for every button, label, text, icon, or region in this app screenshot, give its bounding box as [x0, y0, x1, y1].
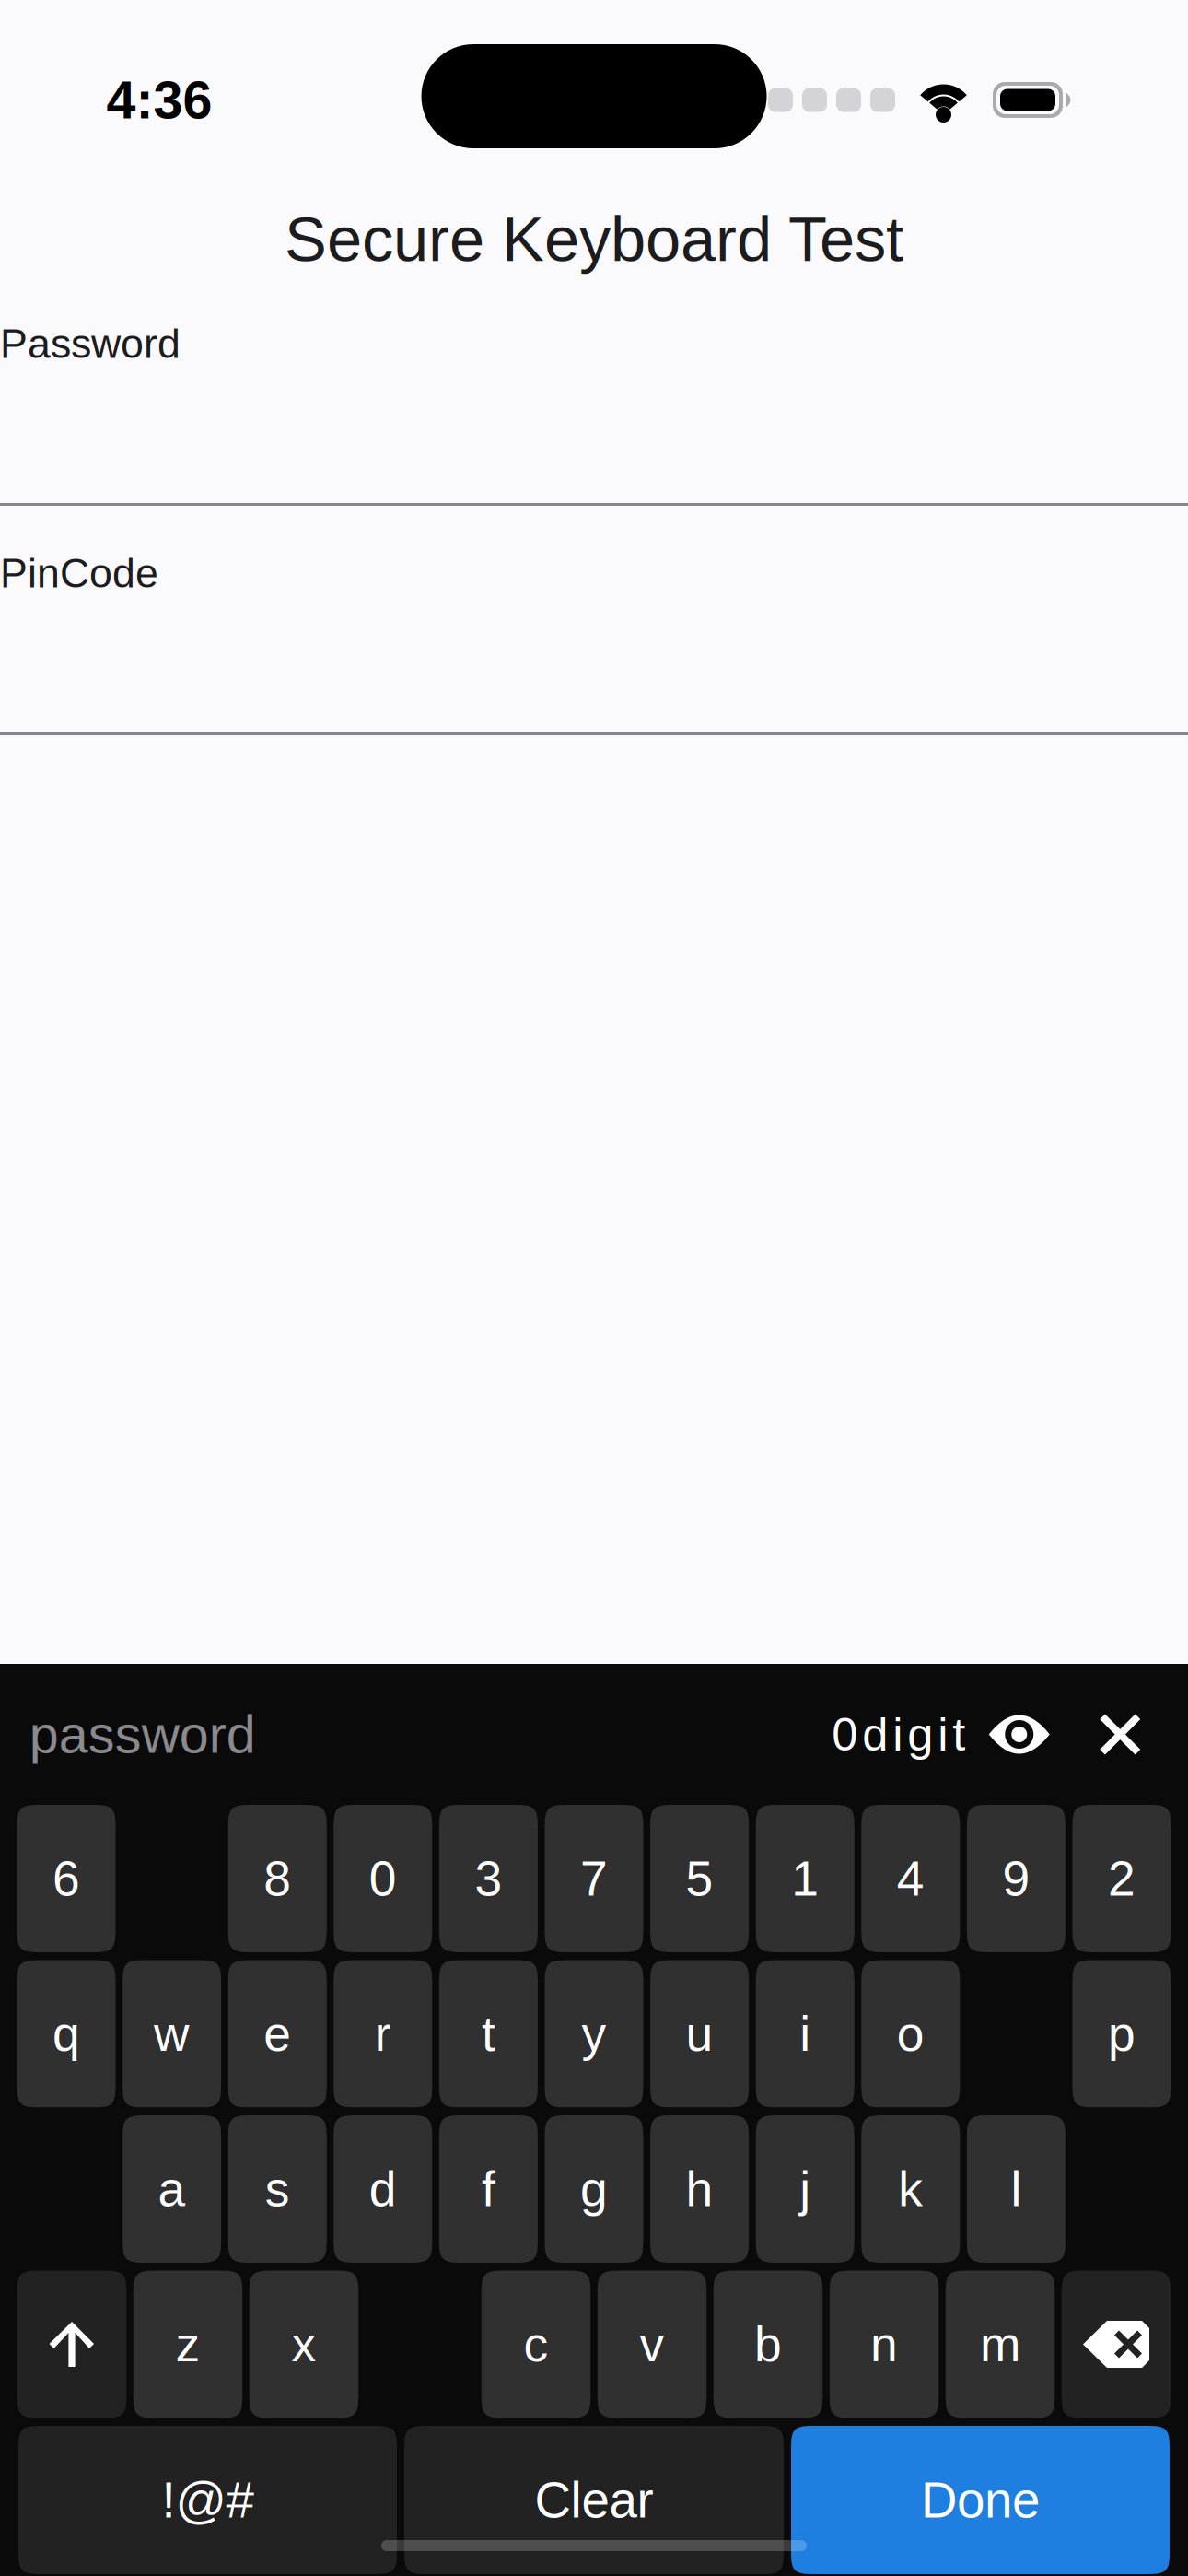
- button[interactable]: d: [334, 2115, 432, 2263]
- staticText: o: [897, 2006, 924, 2061]
- button[interactable]: e: [228, 1960, 327, 2108]
- button[interactable]: p: [1072, 1960, 1171, 2108]
- button[interactable]: w: [123, 1960, 221, 2108]
- button[interactable]: a: [123, 2115, 221, 2263]
- staticText: y: [582, 2006, 606, 2061]
- staticText: i: [800, 2006, 811, 2061]
- staticText: 2: [1108, 1851, 1136, 1906]
- staticText: 4:36: [106, 70, 212, 130]
- button[interactable]: 4: [861, 1805, 960, 1952]
- staticText: Secure Keyboard Test: [285, 204, 903, 274]
- staticText: 9: [1002, 1851, 1030, 1906]
- staticText: 0digit: [832, 1708, 965, 1760]
- staticText: 0: [369, 1851, 397, 1906]
- staticText: h: [686, 2162, 713, 2217]
- staticText: q: [52, 2006, 80, 2061]
- button[interactable]: Close keyboard: [1073, 1688, 1167, 1780]
- staticText: p: [1108, 2006, 1136, 2061]
- button[interactable]: u: [650, 1960, 749, 2108]
- staticText: PinCode: [0, 550, 158, 596]
- button[interactable]: i: [756, 1960, 854, 2108]
- staticText: t: [482, 2006, 495, 2061]
- button[interactable]: y: [545, 1960, 643, 2108]
- staticText: e: [264, 2006, 291, 2061]
- button[interactable]: c: [481, 2271, 591, 2418]
- button[interactable]: f: [439, 2115, 538, 2263]
- staticText: g: [580, 2162, 608, 2217]
- button[interactable]: Clear: [404, 2426, 784, 2574]
- button[interactable]: v: [597, 2271, 707, 2418]
- button[interactable]: g: [545, 2115, 643, 2263]
- button[interactable]: Delete: [1062, 2271, 1171, 2418]
- staticText: Done: [921, 2472, 1040, 2528]
- button[interactable]: 7: [545, 1805, 643, 1952]
- button[interactable]: 2: [1072, 1805, 1171, 1952]
- button[interactable]: Show password: [965, 1688, 1073, 1780]
- staticText: r: [375, 2006, 391, 2061]
- staticText: m: [980, 2317, 1020, 2372]
- staticText: j: [800, 2162, 811, 2217]
- staticText: 1: [791, 1851, 819, 1906]
- staticText: l: [1011, 2162, 1022, 2217]
- staticText: n: [870, 2317, 898, 2372]
- button[interactable]: b: [714, 2271, 823, 2418]
- staticText: x: [291, 2317, 316, 2372]
- button[interactable]: h: [650, 2115, 749, 2263]
- button[interactable]: 1: [756, 1805, 854, 1952]
- button[interactable]: m: [946, 2271, 1055, 2418]
- staticText: 4: [897, 1851, 924, 1906]
- staticText: 8: [264, 1851, 291, 1906]
- button[interactable]: s: [228, 2115, 327, 2263]
- staticText: a: [158, 2162, 186, 2217]
- staticText: 5: [686, 1851, 713, 1906]
- staticText: s: [265, 2162, 290, 2217]
- staticText: password: [29, 1705, 256, 1764]
- button[interactable]: Done: [791, 2426, 1170, 2574]
- button[interactable]: z: [133, 2271, 242, 2418]
- button[interactable]: r: [334, 1960, 432, 2108]
- button[interactable]: Shift: [17, 2271, 126, 2418]
- staticText: Clear: [535, 2472, 653, 2528]
- staticText: k: [898, 2162, 923, 2217]
- button[interactable]: o: [861, 1960, 960, 2108]
- staticText: b: [754, 2317, 782, 2372]
- button[interactable]: k: [861, 2115, 960, 2263]
- button[interactable]: 0: [334, 1805, 432, 1952]
- staticText: v: [640, 2317, 664, 2372]
- button[interactable]: q: [17, 1960, 116, 2108]
- button[interactable]: n: [830, 2271, 939, 2418]
- staticText: f: [482, 2162, 495, 2217]
- button[interactable]: l: [967, 2115, 1065, 2263]
- button[interactable]: 3: [439, 1805, 538, 1952]
- staticText: !@#: [162, 2472, 254, 2528]
- staticText: u: [686, 2006, 713, 2061]
- staticText: 7: [580, 1851, 608, 1906]
- staticText: z: [175, 2317, 200, 2372]
- button[interactable]: 5: [650, 1805, 749, 1952]
- staticText: Password: [0, 321, 181, 367]
- button[interactable]: 6: [17, 1805, 116, 1952]
- button[interactable]: j: [756, 2115, 854, 2263]
- staticText: 3: [475, 1851, 502, 1906]
- button[interactable]: 9: [967, 1805, 1065, 1952]
- staticText: w: [154, 2006, 190, 2061]
- button[interactable]: x: [249, 2271, 359, 2418]
- staticText: c: [524, 2317, 548, 2372]
- button[interactable]: 8: [228, 1805, 327, 1952]
- button[interactable]: !@#: [18, 2426, 397, 2574]
- button[interactable]: t: [439, 1960, 538, 2108]
- staticText: 6: [52, 1851, 80, 1906]
- staticText: d: [369, 2162, 397, 2217]
